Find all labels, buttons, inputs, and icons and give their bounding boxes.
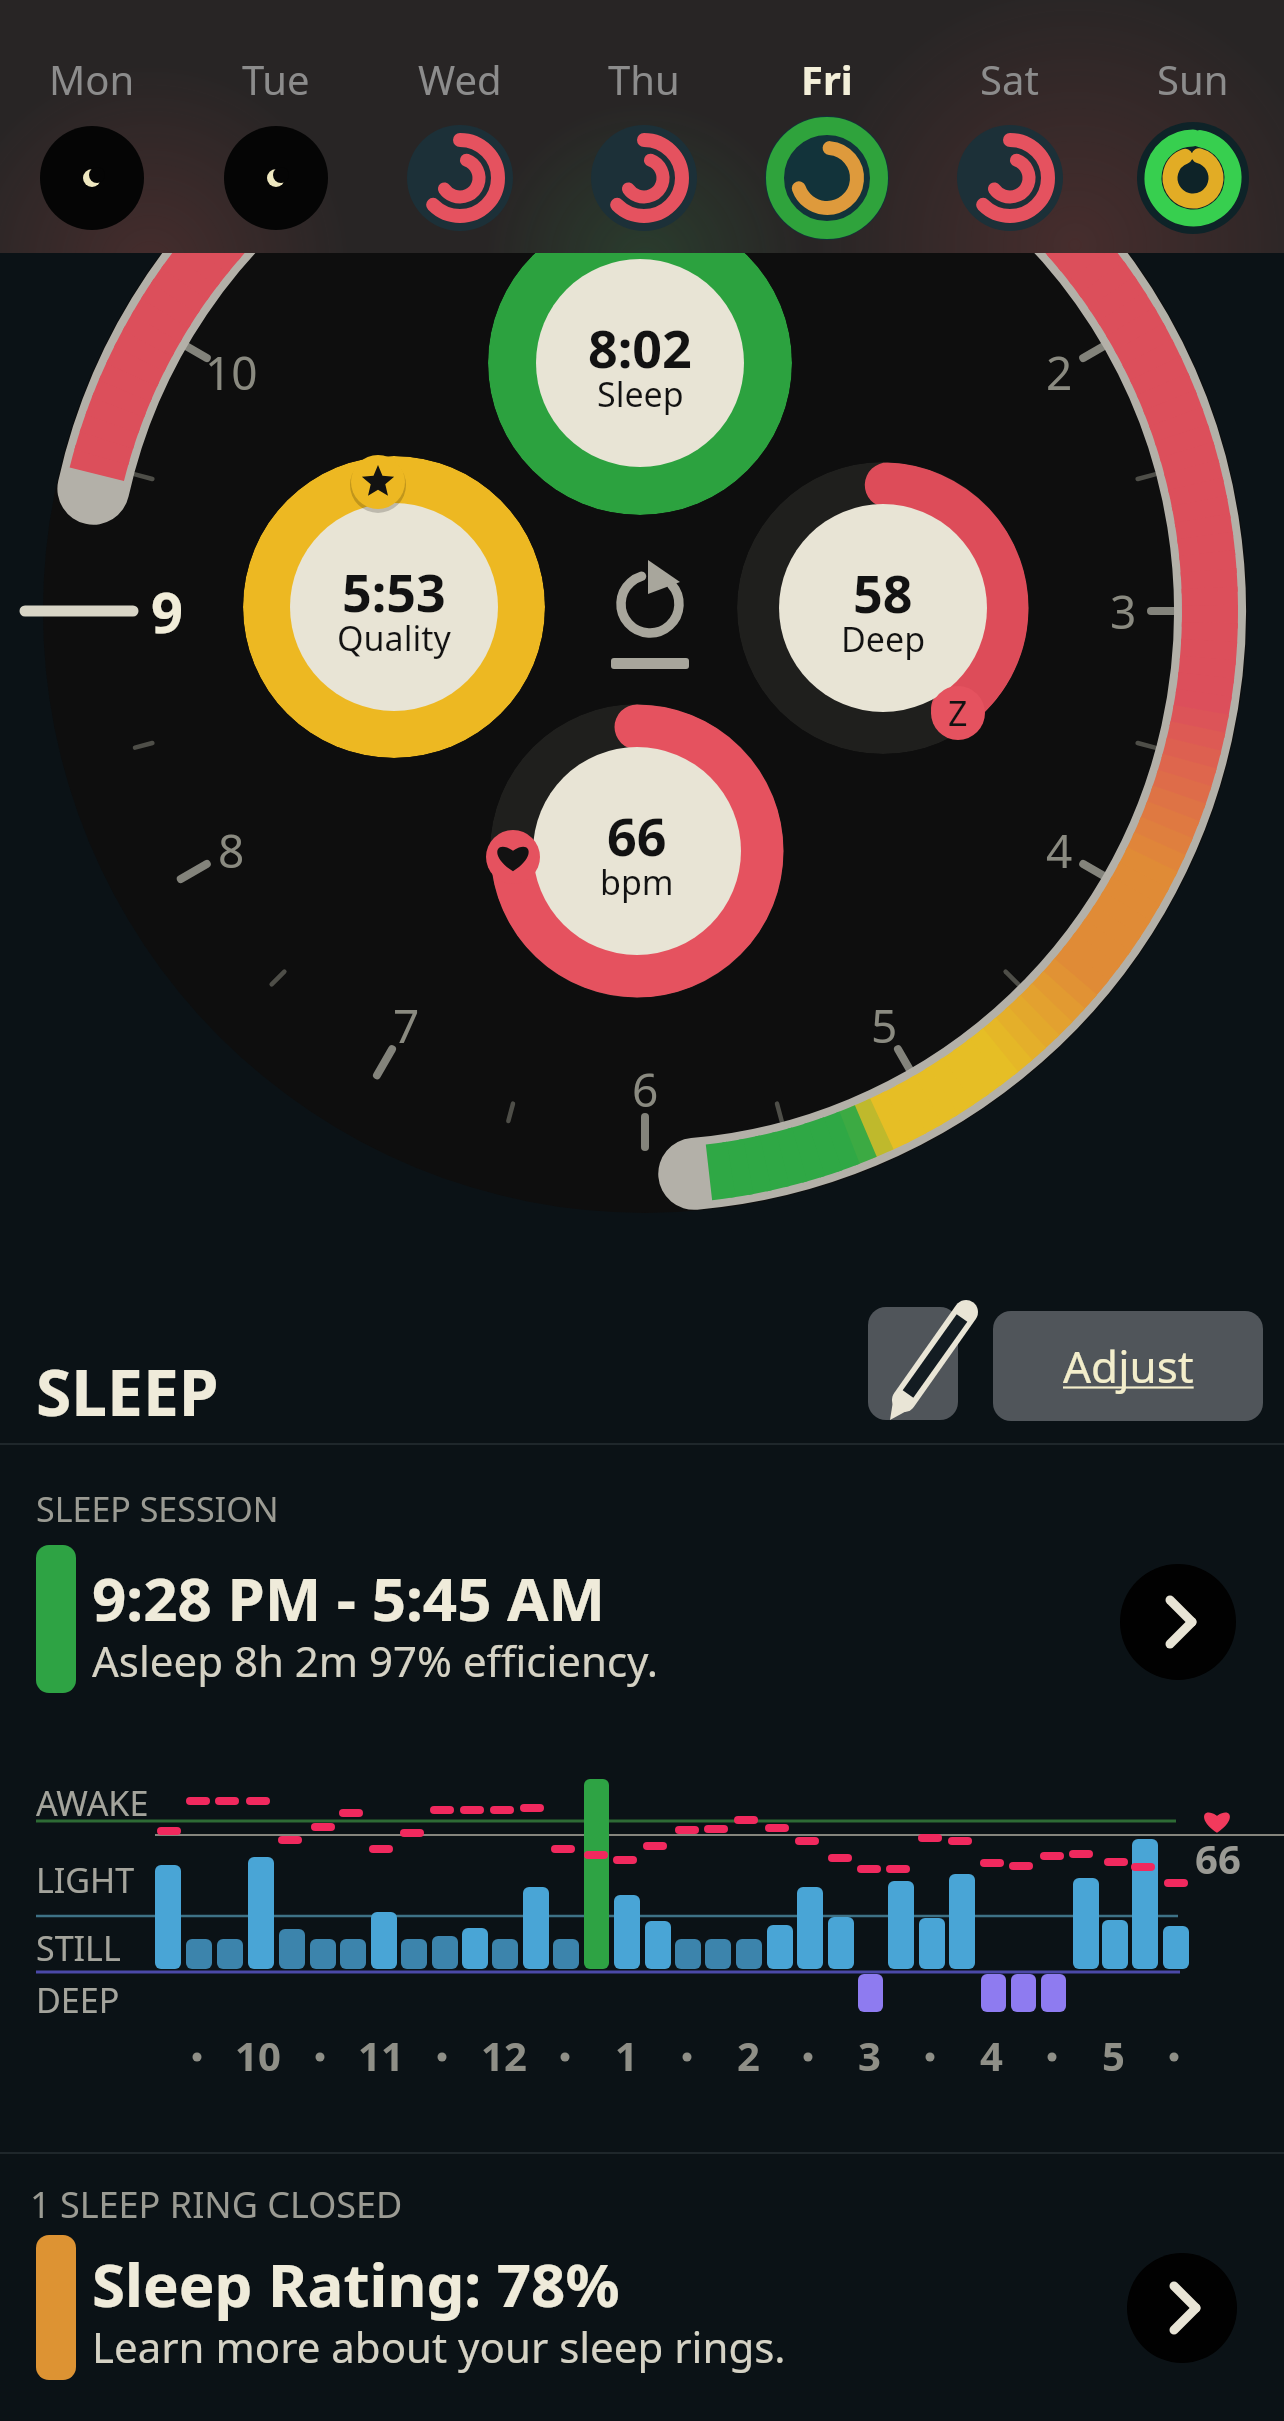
staticText: AWAKE (36, 1780, 149, 1826)
button[interactable]: Sun (1101, 52, 1284, 241)
staticText: 3 (1110, 580, 1137, 643)
button[interactable]: Adjust (993, 1311, 1263, 1421)
staticText: 6 (632, 1058, 659, 1121)
staticText: 5 (871, 994, 898, 1057)
button[interactable]: Sleep Rating: 78% (0, 2228, 1284, 2388)
staticText: Adjust (1063, 1336, 1194, 1396)
staticText: 2 (737, 2028, 760, 2082)
staticText: 8:02 (588, 312, 692, 383)
staticText: STILL (36, 1925, 121, 1971)
staticText: Asleep 8h 2m 97% efficiency. (92, 1632, 659, 1689)
staticText: 12 (481, 2028, 527, 2082)
staticText: DEEP (36, 1977, 120, 2023)
staticText: 66 (607, 800, 667, 871)
staticText: bpm (600, 859, 674, 905)
staticText: 1 (871, 166, 898, 229)
staticText: 4 (980, 2028, 1003, 2082)
staticText: Z (948, 690, 968, 736)
staticText: 10 (235, 2028, 281, 2082)
staticText: 5:53 (342, 556, 446, 627)
button[interactable]: Tue (184, 52, 368, 241)
staticText: 9:28 PM - 5:45 AM (92, 1557, 606, 1639)
staticText: 11 (380, 166, 433, 229)
button[interactable] (737, 462, 1029, 754)
staticText: Quality (337, 615, 451, 661)
staticText: SLEEP (36, 1348, 219, 1435)
staticText: SLEEP SESSION (36, 1486, 279, 1532)
button[interactable] (490, 704, 784, 998)
staticText: 3 (858, 2028, 881, 2082)
staticText: Mon (49, 52, 135, 106)
button[interactable] (243, 456, 545, 758)
staticText: Sleep Rating: 78% (92, 2243, 620, 2325)
staticText: 66 (1195, 1831, 1241, 1885)
staticText: Thu (608, 52, 680, 106)
staticText: Fri (801, 52, 853, 106)
staticText: 58 (853, 557, 913, 628)
staticText: 8 (218, 819, 245, 882)
staticText: Tue (242, 52, 310, 106)
staticText: 5 (1102, 2028, 1125, 2082)
staticText: 11 (358, 2028, 404, 2082)
staticText: Wed (418, 52, 502, 106)
staticText: 7 (393, 994, 420, 1057)
staticText: 1 SLEEP RING CLOSED (30, 2180, 403, 2229)
button[interactable]: Sat (918, 52, 1101, 241)
staticText: Sun (1157, 52, 1229, 106)
staticText: 10 (205, 341, 258, 404)
button[interactable]: Thu (552, 52, 735, 241)
button[interactable] (868, 1307, 958, 1420)
staticText: 12 (619, 102, 672, 165)
staticText: 2 (1046, 341, 1073, 404)
button[interactable] (488, 211, 792, 515)
staticText: Deep (841, 616, 926, 662)
button[interactable]: 9:28 PM - 5:45 AM (0, 1537, 1284, 1702)
staticText: Sat (980, 52, 1039, 106)
button[interactable]: Fri (735, 52, 918, 241)
staticText: 4 (1046, 819, 1073, 882)
staticText: 1 (615, 2028, 638, 2082)
staticText: LIGHT (36, 1857, 135, 1903)
staticText: Learn more about your sleep rings. (92, 2318, 786, 2375)
button[interactable]: Wed (368, 52, 552, 241)
button[interactable] (595, 552, 705, 672)
staticText: Sleep (597, 371, 684, 417)
button[interactable]: Mon (0, 52, 184, 241)
staticText: 9 (151, 573, 184, 649)
